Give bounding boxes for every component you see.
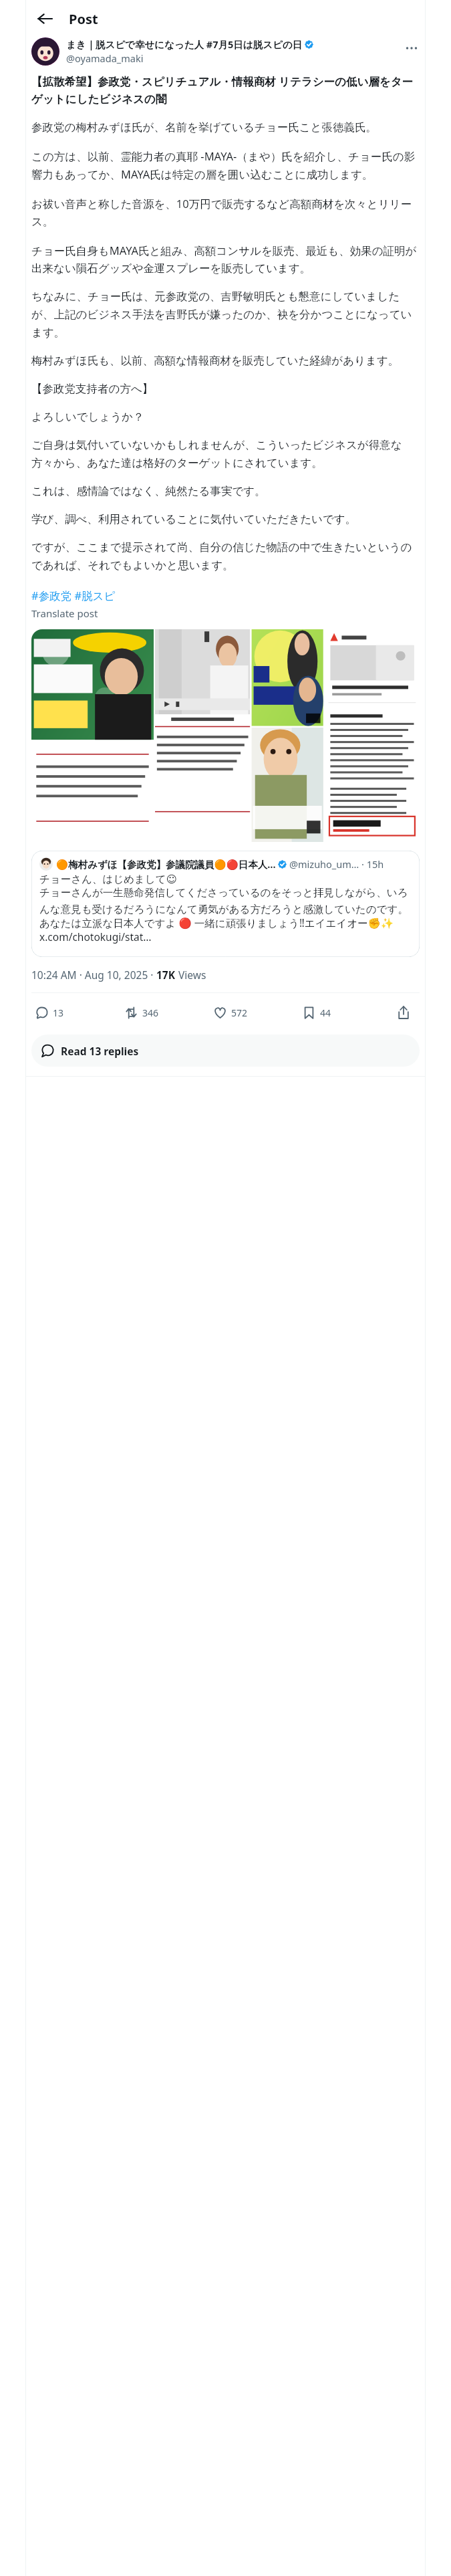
staticText: 【参政党支持者の方へ】 <box>31 382 154 396</box>
button[interactable]: More options <box>401 37 422 59</box>
staticText: 13 <box>53 1006 64 1019</box>
staticText: Read 13 replies <box>61 1044 139 1058</box>
staticText: @mizuho_um… · 15h <box>289 857 384 871</box>
staticText: x.com/chotokugi/stat… <box>39 930 152 944</box>
staticText: チョーさんが一生懸命発信してくださっているのをそっと拝見しながら、いろんな意見も… <box>39 886 412 916</box>
staticText: お祓い音声と称した音源を、10万円で販売するなど高額商材を次々とリリース。 <box>31 196 420 229</box>
staticText: Post <box>69 10 98 28</box>
staticText: 346 <box>142 1006 159 1019</box>
staticText: 572 <box>231 1006 248 1019</box>
staticText: 17K <box>156 968 176 982</box>
staticText: まき｜脱スピで幸せになった人 #7月5日は脱スピの日 <box>66 37 303 51</box>
staticText: 梅村みずほ氏も、以前、高額な情報商材を販売していた経緯があります。 <box>31 354 400 368</box>
staticText: 44 <box>320 1006 331 1019</box>
button[interactable]: 10:24 AM · Aug 10, 2025 · <box>31 968 206 982</box>
button[interactable]: Bookmark <box>303 1000 392 1025</box>
button[interactable]: Back <box>29 3 61 35</box>
staticText: Views <box>176 968 206 982</box>
staticText: チョーさん、はじめまして☺ <box>39 873 177 886</box>
button[interactable]: Reply <box>35 1000 125 1025</box>
button[interactable]: Translate post <box>31 607 98 620</box>
staticText: チョー氏自身もMAYA氏と組み、高額コンサルを販売、最近も、効果の証明が出来ない… <box>31 243 420 276</box>
button[interactable]: Read 13 replies <box>31 1035 420 1067</box>
staticText: よろしいでしょうか？ <box>31 410 144 424</box>
staticText: 参政党の梅村みずほ氏が、名前を挙げているチョー氏こと張徳義氏。 <box>31 120 377 134</box>
button[interactable]: Share <box>392 1000 416 1025</box>
staticText: ご自身は気付いていないかもしれませんが、こういったビジネスが得意な方々から、あな… <box>31 438 420 470</box>
staticText: あなたは立派な日本人ですよ 🔴 一緒に頑張りましょう‼エイエイオー✊✨ <box>39 916 394 930</box>
staticText: ですが、ここまで提示されて尚、自分の信じた物語の中で生きたいというのであれば、そ… <box>31 540 420 572</box>
button[interactable]: Post images <box>31 629 420 842</box>
button[interactable]: まき｜脱スピで幸せになった人 #7月5日は脱スピの日 <box>31 37 422 66</box>
staticText: 🟠梅村みずほ【参政党】参議院議員🟠🔴日本人… <box>56 857 276 871</box>
staticText: 10:24 AM · Aug 10, 2025 · <box>31 968 156 982</box>
button[interactable]: Like <box>214 1000 303 1025</box>
staticText: この方は、以前、霊能力者の真耶 -MAYA-（まや）氏を紹介し、チョー氏の影響力… <box>31 148 420 182</box>
staticText: 【拡散希望】参政党・スピリチュアル・情報商材 リテラシーの低い層をターゲットにし… <box>31 74 420 106</box>
staticText: これは、感情論ではなく、純然たる事実です。 <box>31 484 266 498</box>
button[interactable]: Repost <box>125 1000 214 1025</box>
button[interactable]: 🟠梅村みずほ【参政党】参議院議員🟠🔴日本人… <box>31 851 420 957</box>
staticText: @oyamada_maki <box>66 51 144 65</box>
button[interactable]: #参政党 #脱スピ <box>31 588 116 603</box>
staticText: 学び、調べ、利用されていることに気付いていただきたいです。 <box>31 512 357 526</box>
staticText: ちなみに、チョー氏は、元参政党の、吉野敏明氏とも懇意にしていましたが、上記のビジ… <box>31 290 420 340</box>
